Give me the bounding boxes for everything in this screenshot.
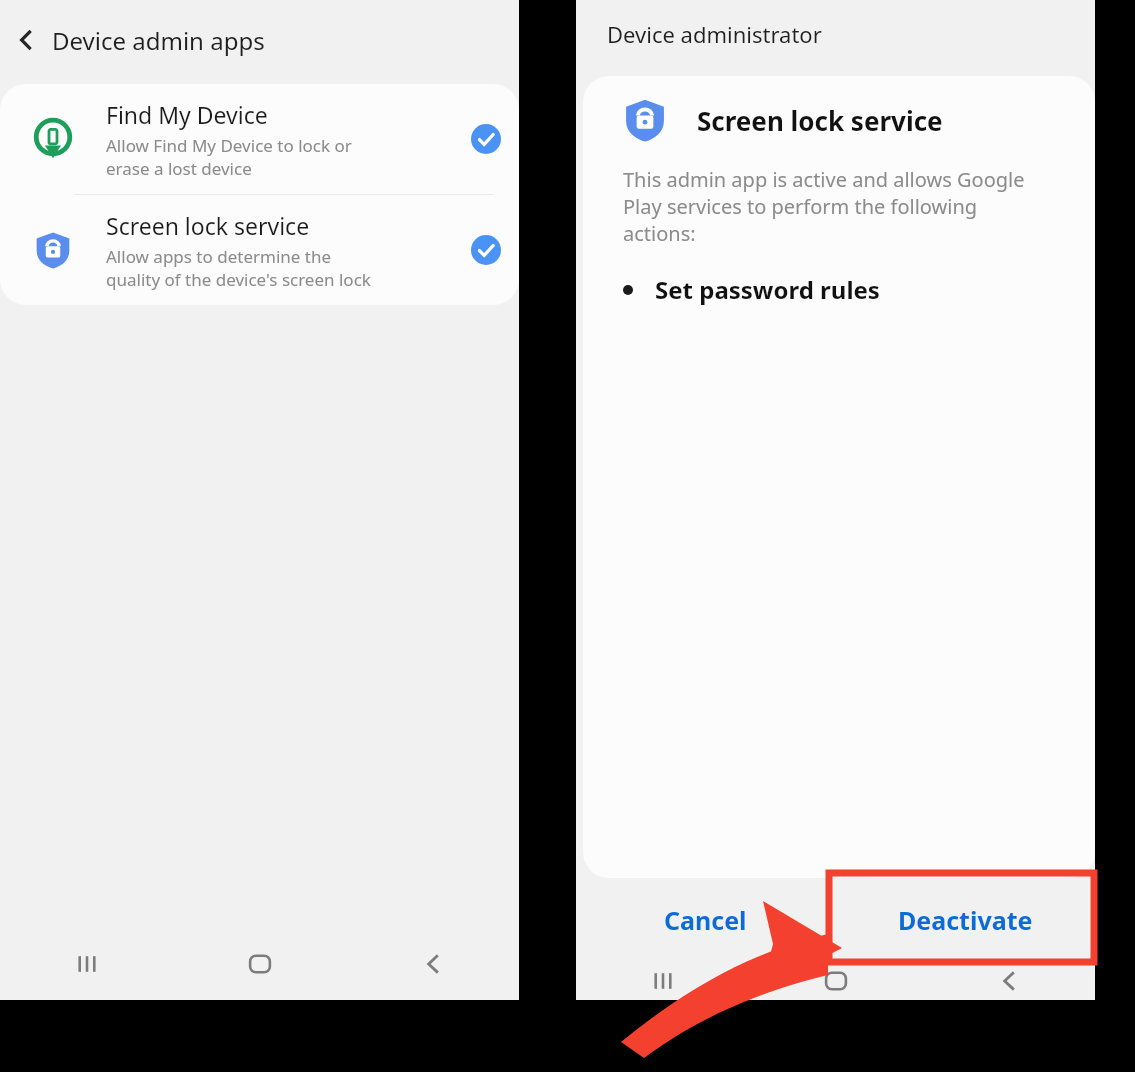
button[interactable]: Back: [0, 14, 52, 66]
staticText: quality of the device's screen lock: [106, 268, 371, 291]
button[interactable]: Recent apps: [576, 962, 749, 1000]
staticText: Set password rules: [655, 273, 880, 306]
button[interactable]: Home: [173, 928, 346, 1000]
button[interactable]: Home: [749, 962, 922, 1000]
staticText: actions:: [623, 220, 696, 247]
staticText: Screen lock service: [697, 103, 943, 138]
staticText: Screen lock service: [106, 210, 310, 241]
staticText: Find My Device: [106, 99, 268, 130]
button[interactable]: Cancel: [576, 878, 835, 962]
staticText: Device administrator: [607, 19, 822, 49]
staticText: Allow Find My Device to lock or: [106, 134, 352, 157]
staticText: Play services to perform the following: [623, 193, 978, 220]
staticText: This admin app is active and allows Goog…: [623, 166, 1025, 193]
staticText: Cancel: [664, 903, 747, 937]
button[interactable]: Deactivate: [835, 878, 1095, 962]
button[interactable]: Screen lock service: [0, 195, 519, 305]
staticText: Device admin apps: [52, 24, 265, 57]
button[interactable]: Recent apps: [0, 928, 173, 1000]
staticText: erase a lost device: [106, 157, 252, 180]
button[interactable]: Find My Device: [0, 84, 519, 194]
staticText: Allow apps to determine the: [106, 245, 332, 268]
button[interactable]: Back: [346, 928, 519, 1000]
staticText: Deactivate: [898, 903, 1033, 937]
button[interactable]: Back: [922, 962, 1095, 1000]
